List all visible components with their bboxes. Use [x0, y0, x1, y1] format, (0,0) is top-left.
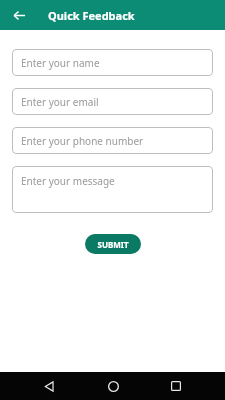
staticText: Quick Feedback — [48, 8, 135, 23]
button[interactable]: Recent apps — [161, 372, 191, 400]
staticText: SUBMIT — [97, 239, 129, 250]
button[interactable]: Home — [98, 372, 128, 400]
staticText: Enter your name — [21, 56, 100, 70]
button[interactable]: Enter your email — [12, 88, 213, 115]
button[interactable]: Back — [34, 372, 64, 400]
button[interactable]: Enter your name — [12, 49, 213, 76]
staticText: Enter your message — [21, 174, 115, 188]
staticText: Enter your phone number — [21, 134, 144, 148]
button[interactable]: Enter your message — [12, 166, 213, 213]
staticText: Enter your email — [21, 95, 99, 109]
button[interactable]: SUBMIT — [85, 234, 141, 254]
button[interactable]: Back — [7, 3, 31, 27]
button[interactable]: Enter your phone number — [12, 127, 213, 154]
